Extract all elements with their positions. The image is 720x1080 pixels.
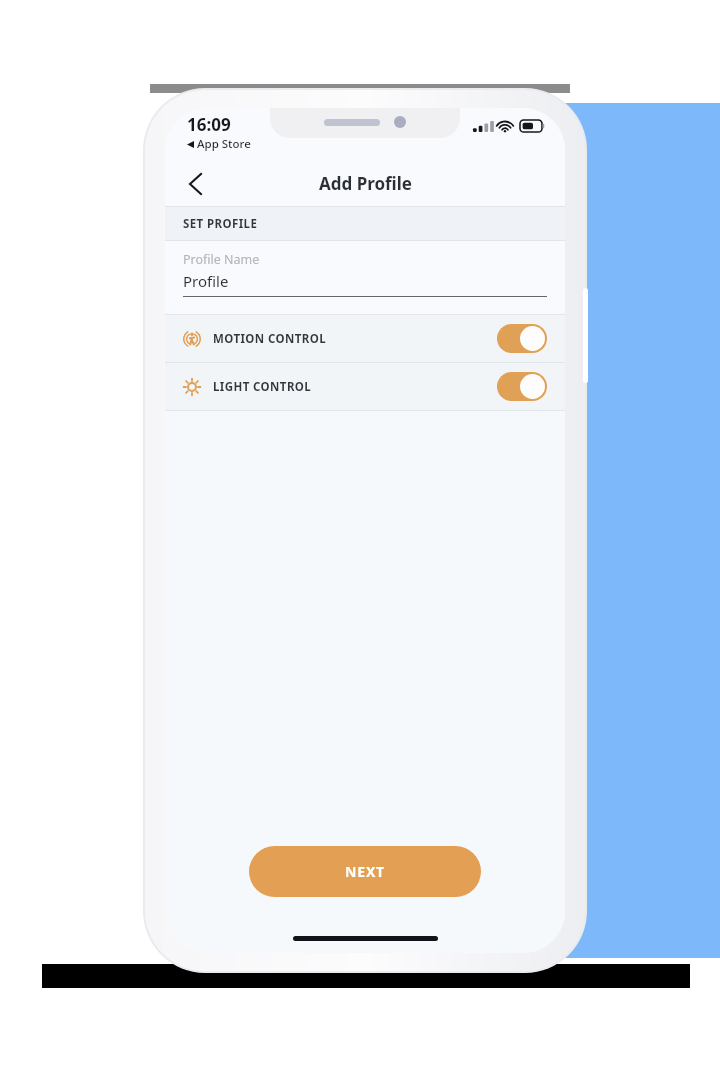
button[interactable]: LIGHT CONTROL: [165, 363, 565, 410]
staticText: Profile Name: [183, 251, 260, 268]
button[interactable]: Profile Name: [165, 241, 565, 314]
staticText: LIGHT CONTROL: [213, 379, 312, 395]
button[interactable]: NEXT: [249, 846, 481, 897]
staticText: NEXT: [345, 862, 385, 881]
button[interactable]: Back: [173, 162, 217, 206]
staticText: 16:09: [187, 113, 231, 136]
staticText: SET PROFILE: [183, 216, 258, 232]
staticText: Add Profile: [319, 172, 412, 195]
staticText: MOTION CONTROL: [213, 331, 327, 347]
staticText: App Store: [197, 136, 251, 152]
button[interactable]: MOTION CONTROL: [165, 315, 565, 362]
staticText: Profile: [183, 271, 229, 291]
